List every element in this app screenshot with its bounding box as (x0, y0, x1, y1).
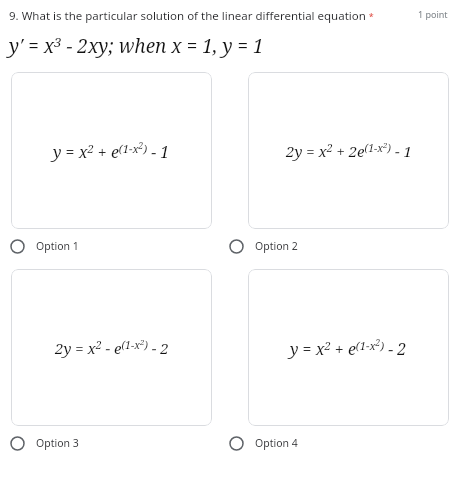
staticText: y′ = x3 − 2xy; when x = 1, y = 1 (9, 33, 264, 59)
staticText: 9. What is the particular solution of th… (9, 8, 418, 24)
button[interactable]: 2y = x2 − e(1−x2) − 2 (11, 269, 212, 426)
staticText: y = x2 + e(1−x2) − 2 (290, 337, 407, 359)
button[interactable]: y = x2 + e(1−x2) − 1 (11, 72, 212, 229)
staticText: 2y = x2 − e(1−x2) − 2 (55, 337, 169, 358)
staticText: Option 1 (36, 239, 79, 253)
button[interactable]: Option 4 (229, 431, 449, 455)
button[interactable]: 2y = x2 + 2e(1−x2) − 1 (248, 72, 449, 229)
staticText: 2y = x2 + 2e(1−x2) − 1 (286, 140, 412, 161)
staticText: Option 3 (36, 436, 79, 450)
staticText: Option 4 (255, 436, 298, 450)
button[interactable]: y = x2 + e(1−x2) − 2 (248, 269, 449, 426)
staticText: 1 point (418, 8, 448, 20)
button[interactable]: Option 1 (10, 234, 229, 258)
staticText: y = x2 + e(1−x2) − 1 (53, 140, 170, 162)
staticText: Option 2 (255, 239, 298, 253)
button[interactable]: Option 3 (10, 431, 229, 455)
button[interactable]: Option 2 (229, 234, 449, 258)
